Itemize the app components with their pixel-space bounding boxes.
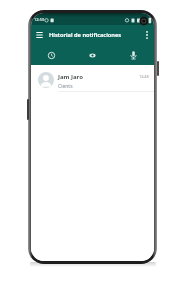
button[interactable] [72,45,113,65]
staticText: Jam Jaro [58,73,83,81]
staticText: Historial de notificaciones [49,31,122,39]
staticText: 12:48 [139,74,149,79]
button[interactable]: Historial de notificaciones [31,25,154,45]
staticText: Cients [58,83,73,90]
staticText: 12:50 [34,17,45,22]
button[interactable] [31,45,72,65]
button[interactable] [141,25,154,45]
button[interactable]: Jam Jaro [31,65,154,91]
button[interactable] [31,25,49,45]
button[interactable] [113,45,154,65]
